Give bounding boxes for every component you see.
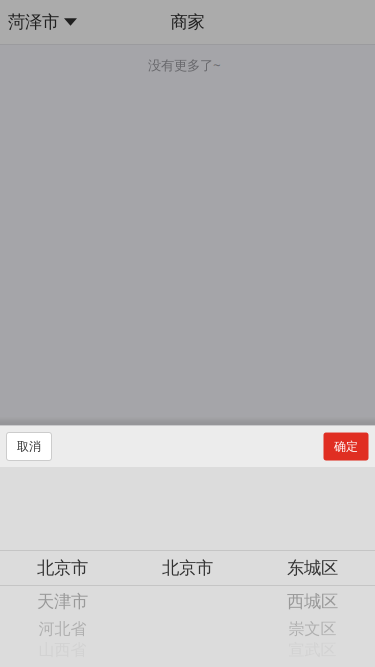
staticText: 确定 [334, 439, 358, 454]
button[interactable]: 取消 [6, 432, 51, 460]
staticText: 北京市 [162, 557, 213, 579]
staticText: 崇文区 [288, 619, 336, 639]
staticText: 山西省 [38, 640, 86, 660]
staticText: 西城区 [287, 591, 338, 612]
button[interactable]: 菏泽市 [0, 0, 85, 44]
staticText: 取消 [17, 439, 41, 454]
staticText: 河北省 [38, 619, 86, 639]
staticText: 菏泽市 [8, 11, 59, 33]
staticText: 天津市 [37, 591, 88, 612]
staticText: 北京市 [37, 557, 88, 579]
staticText: 东城区 [287, 557, 338, 579]
staticText: 商家 [170, 11, 204, 33]
staticText: 没有更多了~ [148, 56, 221, 74]
button[interactable]: 确定 [323, 432, 368, 460]
